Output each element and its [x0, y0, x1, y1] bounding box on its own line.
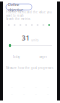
staticText: Define objective: [8, 2, 23, 12]
staticText: Target: [39, 55, 47, 59]
staticText: 31: [22, 34, 30, 42]
staticText: Search the metrics: [6, 17, 30, 21]
staticText: Measure how the goal progresses: [6, 66, 53, 70]
button[interactable]: Define objective: [6, 4, 32, 10]
staticText: Today: [12, 55, 19, 59]
staticText: Pick the metric and the value you want t…: [6, 10, 52, 18]
staticText: units: [31, 38, 38, 42]
